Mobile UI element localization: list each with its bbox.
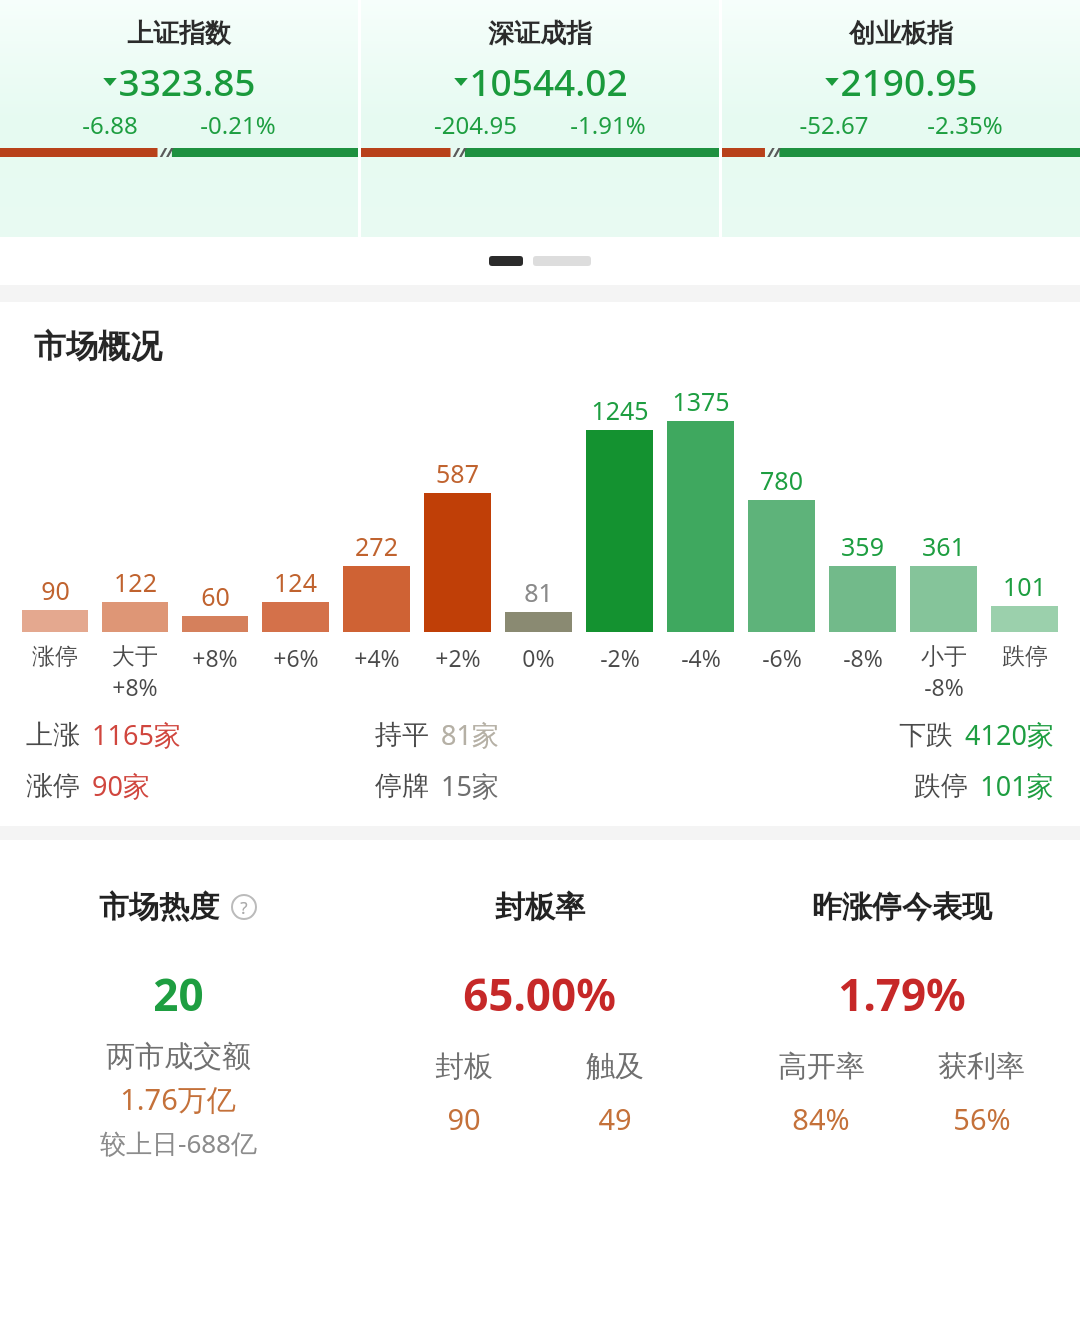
staticText: -8% <box>843 642 883 673</box>
staticText: 101家 <box>980 767 1054 804</box>
staticText: -1.91% <box>570 108 646 141</box>
staticText: 大于 <box>112 642 158 671</box>
staticText: 1245 <box>591 393 649 427</box>
staticText: 创业板指 <box>849 17 953 50</box>
staticText: -204.95 <box>434 108 517 141</box>
staticText: 触及 <box>586 1048 644 1085</box>
staticText: 60 <box>201 579 230 613</box>
staticText: 下跌 <box>899 718 953 752</box>
staticText: 272 <box>355 529 398 563</box>
staticText: -2% <box>600 642 640 673</box>
staticText: 高开率 <box>778 1048 865 1085</box>
staticText: 90 <box>447 1099 481 1138</box>
staticText: 市场热度 <box>99 888 219 926</box>
staticText: 上涨 <box>26 718 80 752</box>
staticText: 涨停 <box>26 769 80 803</box>
button[interactable]: 昨涨停今表现 <box>723 840 1080 1326</box>
staticText: 780 <box>760 463 803 497</box>
staticText: +8% <box>112 671 158 702</box>
staticText: ? <box>240 896 248 919</box>
staticText: 获利率 <box>938 1048 1025 1085</box>
staticText: 1.76万亿 <box>120 1079 236 1119</box>
staticText: -0.21% <box>200 108 276 141</box>
staticText: 两市成交额 <box>106 1038 251 1075</box>
button[interactable]: 深证成指 <box>361 0 719 237</box>
staticText: 持平 <box>375 718 429 752</box>
staticText: 361 <box>922 529 965 563</box>
staticText: 56% <box>953 1099 1011 1138</box>
staticText: 90家 <box>92 767 150 804</box>
button[interactable]: 上证指数 <box>0 0 358 237</box>
staticText: 20 <box>153 964 204 1024</box>
button[interactable]: 市场热度 <box>0 840 356 1326</box>
staticText: 359 <box>841 529 884 563</box>
staticText: 停牌 <box>375 769 429 803</box>
staticText: +6% <box>273 642 319 673</box>
staticText: 65.00% <box>463 964 616 1024</box>
staticText: 49 <box>598 1099 632 1138</box>
staticText: 小于 <box>921 642 967 671</box>
staticText: 封板 <box>435 1048 493 1085</box>
button[interactable]: 帮助 <box>231 894 257 920</box>
staticText: 15家 <box>441 767 499 804</box>
staticText: -4% <box>681 642 721 673</box>
staticText: 1165家 <box>92 716 181 753</box>
staticText: 深证成指 <box>488 17 592 50</box>
staticText: 涨停 <box>32 642 78 671</box>
staticText: 昨涨停今表现 <box>812 888 992 926</box>
staticText: 跌停 <box>914 769 968 803</box>
staticText: -8% <box>924 671 964 702</box>
staticText: +4% <box>354 642 400 673</box>
staticText: 4120家 <box>965 716 1054 753</box>
staticText: 2190.95 <box>840 56 978 106</box>
staticText: 10544.02 <box>469 56 628 106</box>
staticText: +8% <box>192 642 238 673</box>
staticText: 122 <box>114 565 157 599</box>
staticText: -2.35% <box>927 108 1003 141</box>
staticText: +2% <box>435 642 481 673</box>
staticText: 1375 <box>672 384 730 418</box>
staticText: 101 <box>1003 569 1046 603</box>
staticText: 0% <box>522 642 555 673</box>
button[interactable]: 封板率 <box>361 840 718 1326</box>
staticText: 封板率 <box>495 888 585 926</box>
staticText: 90 <box>41 573 70 607</box>
staticText: 3323.85 <box>118 56 256 106</box>
staticText: -6% <box>762 642 802 673</box>
staticText: 较上日-688亿 <box>100 1125 257 1161</box>
staticText: 84% <box>792 1099 850 1138</box>
staticText: 81 <box>524 575 553 609</box>
staticText: 81家 <box>441 716 499 753</box>
staticText: 上证指数 <box>127 17 231 50</box>
staticText: 124 <box>274 565 317 599</box>
staticText: 587 <box>436 456 479 490</box>
button[interactable]: 创业板指 <box>722 0 1080 237</box>
staticText: 跌停 <box>1002 642 1048 671</box>
staticText: -52.67 <box>799 108 869 141</box>
staticText: 1.79% <box>838 964 966 1024</box>
staticText: -6.88 <box>82 108 138 141</box>
staticText: 市场概况 <box>34 326 162 366</box>
